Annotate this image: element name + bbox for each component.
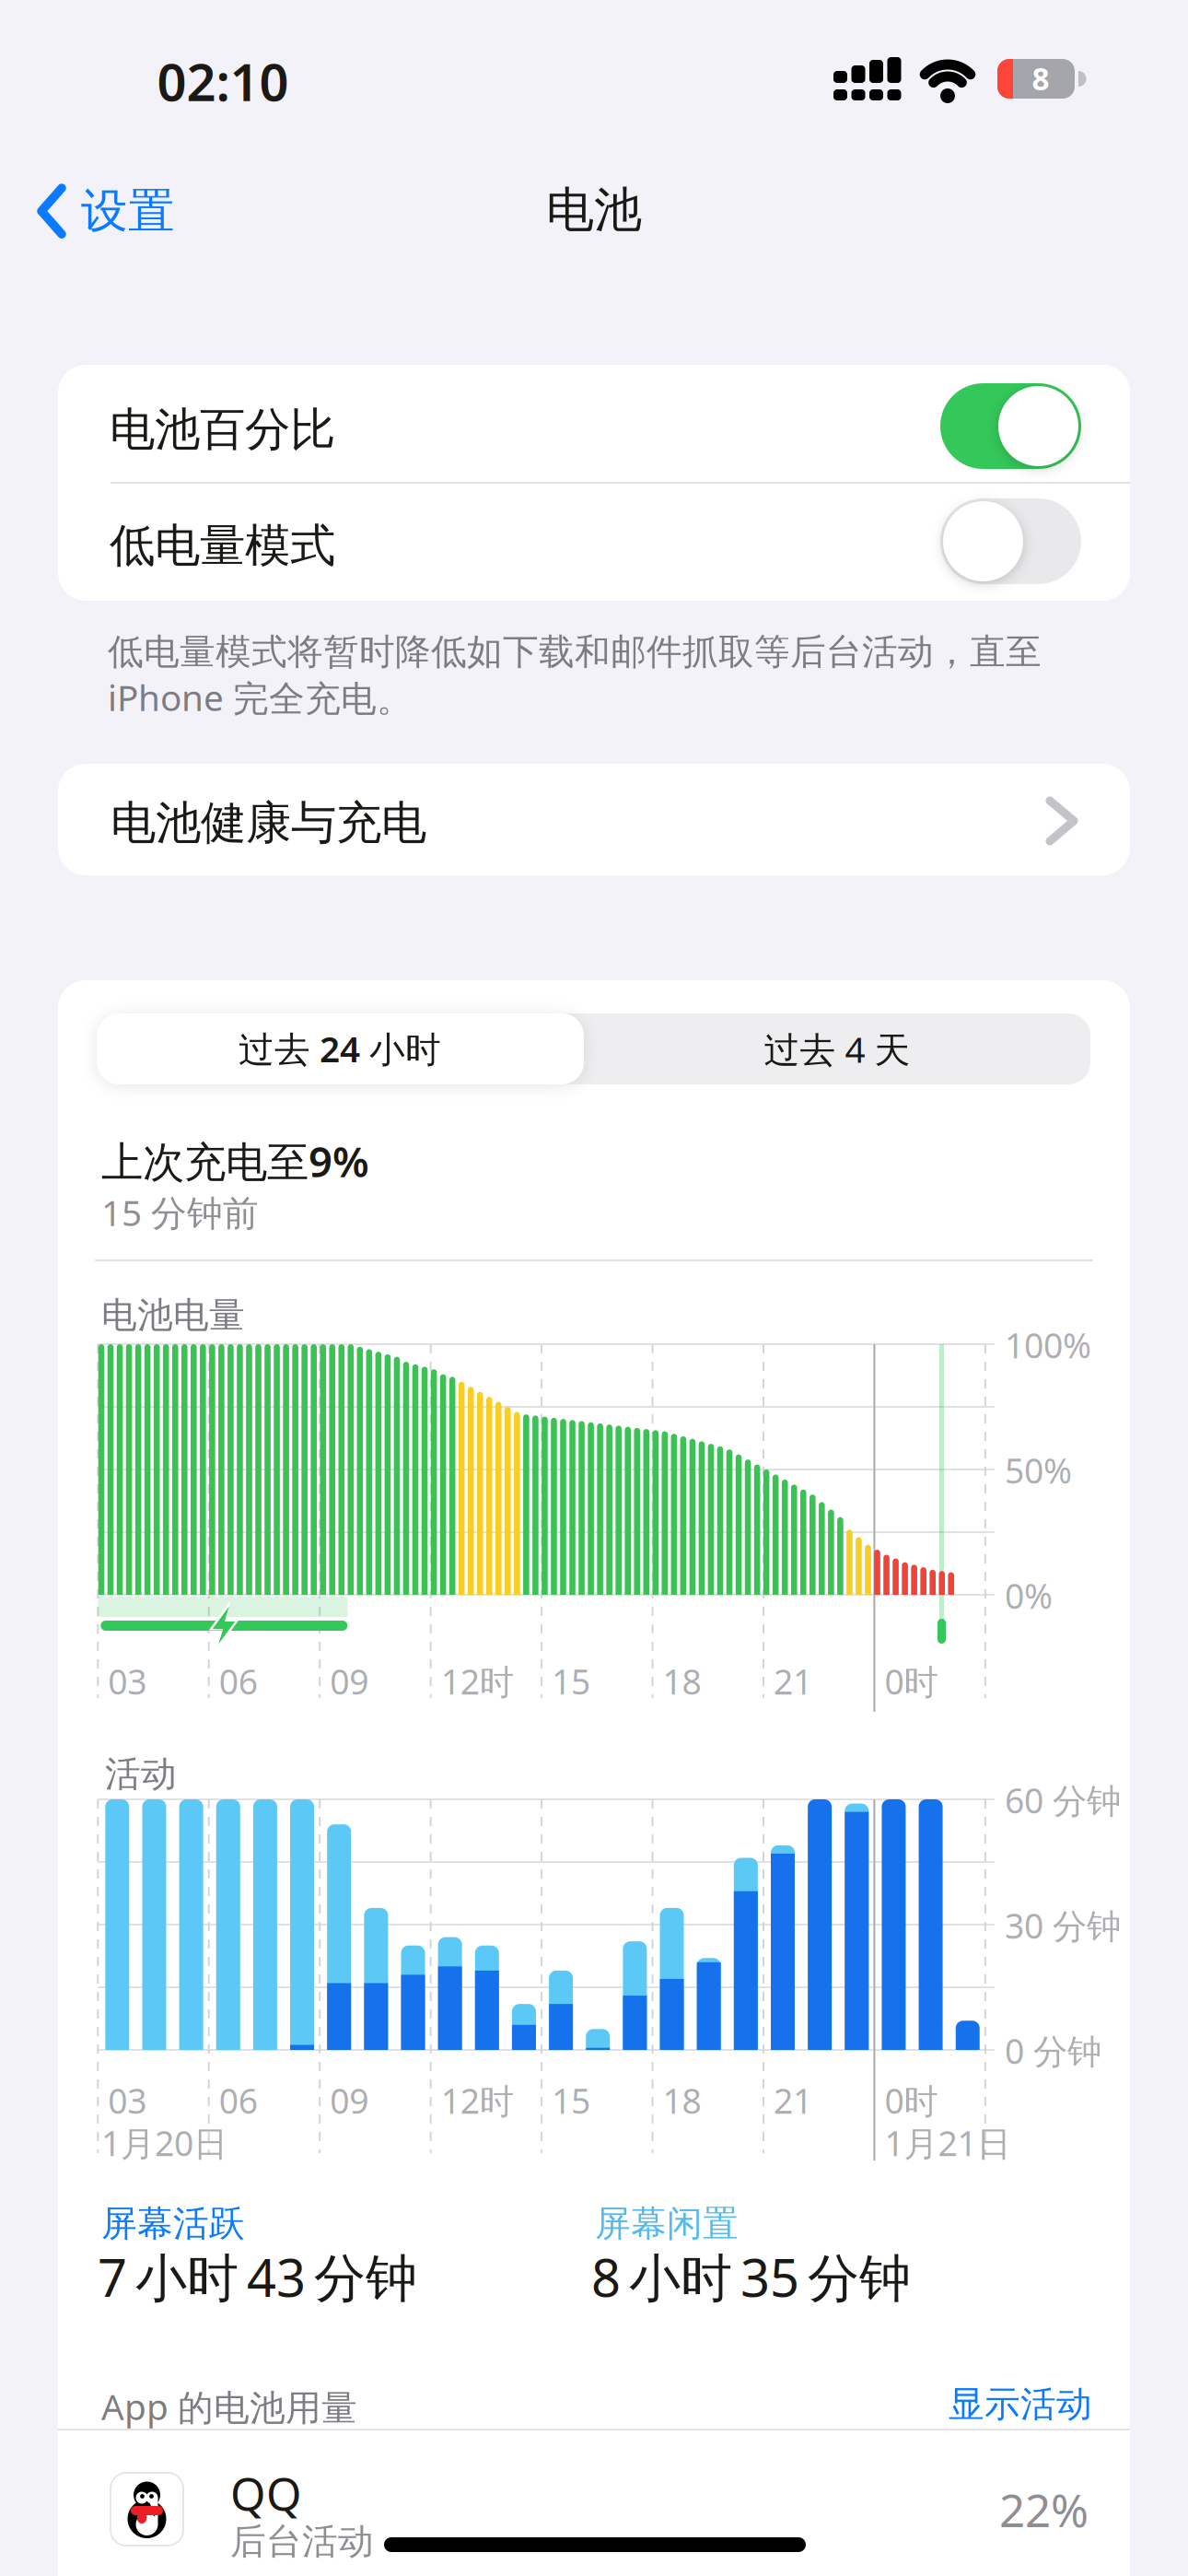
staticText: 0 分钟 [1005,2028,1101,2074]
staticText: 06 [219,2078,258,2123]
staticText: 18 [663,1658,701,1704]
staticText: 8 [1032,58,1049,99]
button[interactable]: 电池百分比 [940,383,1081,469]
staticText: 0时 [884,2078,938,2123]
staticText: App 的电池用量 [101,2383,357,2430]
staticText: 显示活动 [949,2383,1092,2426]
staticText: 屏幕闲置 [595,2202,739,2246]
staticText: 过去 24 小时 [239,1025,441,1072]
staticText: 15 [552,2078,590,2123]
staticText: 12时 [441,1658,514,1704]
staticText: 电池 [546,181,642,240]
staticText: 30 分钟 [1005,1903,1121,1948]
button[interactable]: 过去 4 天 [584,1013,1090,1084]
staticText: 屏幕活跃 [101,2202,245,2246]
staticText: 03 [108,2078,147,2123]
staticText: QQ [230,2463,302,2523]
staticText: 设置 [81,182,175,240]
button[interactable]: QQ [58,2453,1130,2576]
staticText: 电池电量 [101,1294,245,1337]
staticText: 18 [663,2078,701,2123]
button[interactable]: 显示活动 [949,2383,1092,2426]
staticText: 15 [552,1658,590,1704]
staticText: 电池百分比 [110,402,335,458]
staticText: 15 分钟前 [101,1188,259,1236]
staticText: 03 [108,1658,147,1704]
staticText: 活动 [105,1752,177,1796]
staticText: 低电量模式 [110,518,335,574]
button[interactable]: 低电量模式 [940,498,1081,584]
staticText: 09 [330,2078,369,2123]
staticText: 1月20日 [101,2120,227,2166]
staticText: 50% [1005,1447,1072,1493]
staticText: 12时 [441,2078,514,2123]
button[interactable]: 过去 24 小时 [97,1013,584,1084]
staticText: 0时 [884,1658,938,1704]
staticText: 06 [219,1658,258,1704]
staticText: iPhone 完全充电。 [108,673,413,721]
staticText: 上次充电至9% [101,1133,369,1189]
staticText: 21 [774,1658,812,1704]
button[interactable]: 电池健康与充电 [58,764,1130,875]
staticText: 22% [999,2479,1089,2540]
staticText: 低电量模式将暂时降低如下载和邮件抓取等后台活动，直至 [108,630,1042,674]
staticText: 100% [1005,1322,1091,1368]
button[interactable]: 设置 [37,182,175,240]
staticText: 1月21日 [884,2120,1011,2166]
staticText: 21 [774,2078,812,2123]
staticText: 02:10 [157,47,289,115]
staticText: 电池健康与充电 [111,795,426,851]
staticText: 7 小时 43 分钟 [98,2242,417,2311]
staticText: 后台活动 [230,2520,374,2564]
staticText: 60 分钟 [1005,1777,1121,1823]
staticText: 8 小时 35 分钟 [591,2242,911,2311]
staticText: 过去 4 天 [764,1025,910,1073]
staticText: 0% [1005,1573,1053,1618]
staticText: 09 [330,1658,369,1704]
